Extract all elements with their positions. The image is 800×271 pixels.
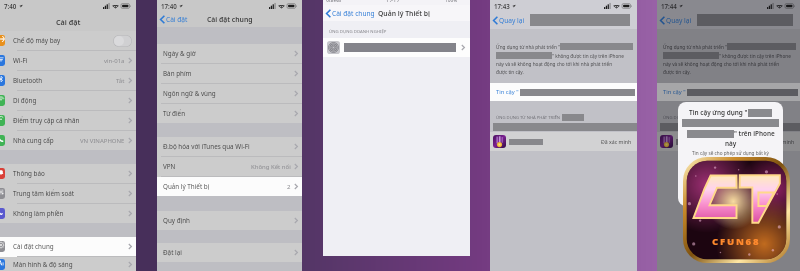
staticText: Wi-Fi xyxy=(13,56,28,65)
staticText: CFUN68 xyxy=(712,235,761,248)
button[interactable]: VPN xyxy=(157,157,302,176)
button[interactable]: Đã xác minh xyxy=(657,132,800,151)
button[interactable]: Đã xác minh xyxy=(490,132,637,151)
staticText: Ngày & giờ xyxy=(163,49,196,58)
button[interactable]: Không làm phiền xyxy=(0,204,136,223)
other: CFUN68 app logo xyxy=(683,157,790,263)
staticText: Trung tâm kiểm soát xyxy=(13,189,75,198)
button[interactable]: Chế độ máy bay xyxy=(0,31,136,50)
staticText: Điểm truy cập cá nhân xyxy=(13,116,80,125)
staticText: Quay lại xyxy=(499,16,525,25)
staticText: Cài đặt chung xyxy=(207,15,253,24)
staticText: 17:40 xyxy=(161,2,177,10)
button[interactable]: Quản lý Thiết bị xyxy=(157,177,302,196)
button[interactable]: Quy định xyxy=(157,211,302,230)
staticText: Cài đặt xyxy=(56,17,81,27)
staticText: Bàn phím xyxy=(163,69,192,78)
staticText: 2 xyxy=(287,183,291,191)
staticText: Từ điển xyxy=(163,109,186,118)
staticText: Cài đặt chung xyxy=(13,242,54,251)
button[interactable]: Bluetooth xyxy=(0,71,136,90)
staticText: được tin cậy. xyxy=(663,69,691,75)
staticText: Tin cậy sẽ cho phép sử dụng bất kỳ xyxy=(692,150,769,156)
staticText: Chế độ máy bay xyxy=(13,36,61,45)
staticText: Viettel xyxy=(326,0,342,2)
button[interactable]: Wi-Fi xyxy=(0,51,136,70)
staticText: Thông báo xyxy=(13,169,45,178)
staticText: " không được tin cậy trên iPhone xyxy=(719,53,791,59)
staticText: Ngôn ngữ & vùng xyxy=(163,89,216,98)
staticText: Tin cậy ứng dụng " xyxy=(689,108,748,117)
staticText: Quản lý Thiết bị xyxy=(163,182,210,191)
staticText: 17:43 xyxy=(494,2,510,10)
button[interactable]: Đ.bộ hóa với iTunes qua Wi-Fi xyxy=(157,137,302,156)
staticText: này xyxy=(725,139,737,148)
staticText: Ứng dụng từ nhà phát triển " xyxy=(663,44,727,50)
staticText: Không làm phiền xyxy=(13,209,64,218)
button[interactable]: Bàn phím xyxy=(157,64,302,83)
button[interactable]: Màn hình & độ sáng xyxy=(0,257,136,271)
staticText: Nhà cung cấp xyxy=(13,136,54,145)
staticText: Di động xyxy=(13,96,37,105)
button[interactable]: Cài đặt xyxy=(157,11,302,27)
button[interactable]: Thông báo xyxy=(0,164,136,183)
staticText: Tắt xyxy=(116,77,125,85)
button[interactable]: Tin cậy " xyxy=(490,83,637,101)
button[interactable]: Ngôn ngữ & vùng xyxy=(157,84,302,103)
staticText: Không Kết nối xyxy=(251,163,291,171)
staticText: Đặt lại xyxy=(163,248,182,257)
staticText: Tin cậy " xyxy=(663,88,686,96)
staticText: 100% xyxy=(445,0,458,2)
staticText: ỨNG DỤNG TỪ NHÀ PHÁT TRIỂN xyxy=(663,115,728,121)
staticText: 17:44 xyxy=(661,2,677,10)
staticText: Quản lý Thiết bị xyxy=(378,9,430,18)
staticText: Quy định xyxy=(163,216,190,225)
button[interactable] xyxy=(323,38,470,57)
staticText: 7:40 xyxy=(4,2,17,10)
staticText: Ứng dụng từ nhà phát triển " xyxy=(496,44,560,50)
button[interactable]: Nhà cung cấp xyxy=(0,131,136,150)
staticText: VN VINAPHONE xyxy=(80,137,125,145)
staticText: được tin cậy. xyxy=(496,69,524,75)
staticText: Bluetooth xyxy=(13,76,43,85)
staticText: Quay lại xyxy=(666,16,692,25)
staticText: Đã xác minh xyxy=(601,138,632,145)
staticText: VPN xyxy=(163,162,176,171)
button[interactable]: Trung tâm kiểm soát xyxy=(0,184,136,203)
staticText: " trên iPhone xyxy=(734,129,775,138)
staticText: Màn hình & độ sáng xyxy=(13,260,73,269)
staticText: Đ.bộ hóa với iTunes qua Wi-Fi xyxy=(163,142,250,151)
button[interactable]: Quay lại xyxy=(490,11,637,29)
button[interactable]: Cài đặt chung xyxy=(323,5,470,21)
staticText: " không được tin cậy trên iPhone xyxy=(552,53,624,59)
staticText: Tin cậy " xyxy=(496,88,519,96)
button[interactable]: Cài đặt chung xyxy=(0,237,136,256)
button[interactable]: Quay lại xyxy=(657,11,800,29)
button[interactable]: Ngày & giờ xyxy=(157,44,302,63)
staticText: này và sẽ không hoạt động cho tới khi nh… xyxy=(663,61,780,67)
staticText: 12:17 xyxy=(386,0,400,2)
staticText: này và sẽ không hoạt động cho tới khi nh… xyxy=(496,61,613,67)
staticText: vin-01a xyxy=(104,57,125,65)
button[interactable]: Tin cậy " xyxy=(657,83,800,101)
staticText: Cài đặt xyxy=(166,15,188,24)
staticText: ỨNG DỤNG DOANH NGHIỆP xyxy=(329,28,387,34)
staticText: ỨNG DỤNG TỪ NHÀ PHÁT TRIỂN xyxy=(496,115,561,121)
button[interactable]: Điểm truy cập cá nhân xyxy=(0,111,136,130)
button[interactable]: Di động xyxy=(0,91,136,110)
button[interactable]: Đặt lại xyxy=(157,243,302,262)
staticText: Đã xác minh xyxy=(764,138,795,145)
staticText: Cài đặt chung xyxy=(332,9,375,18)
button[interactable]: Từ điển xyxy=(157,104,302,123)
